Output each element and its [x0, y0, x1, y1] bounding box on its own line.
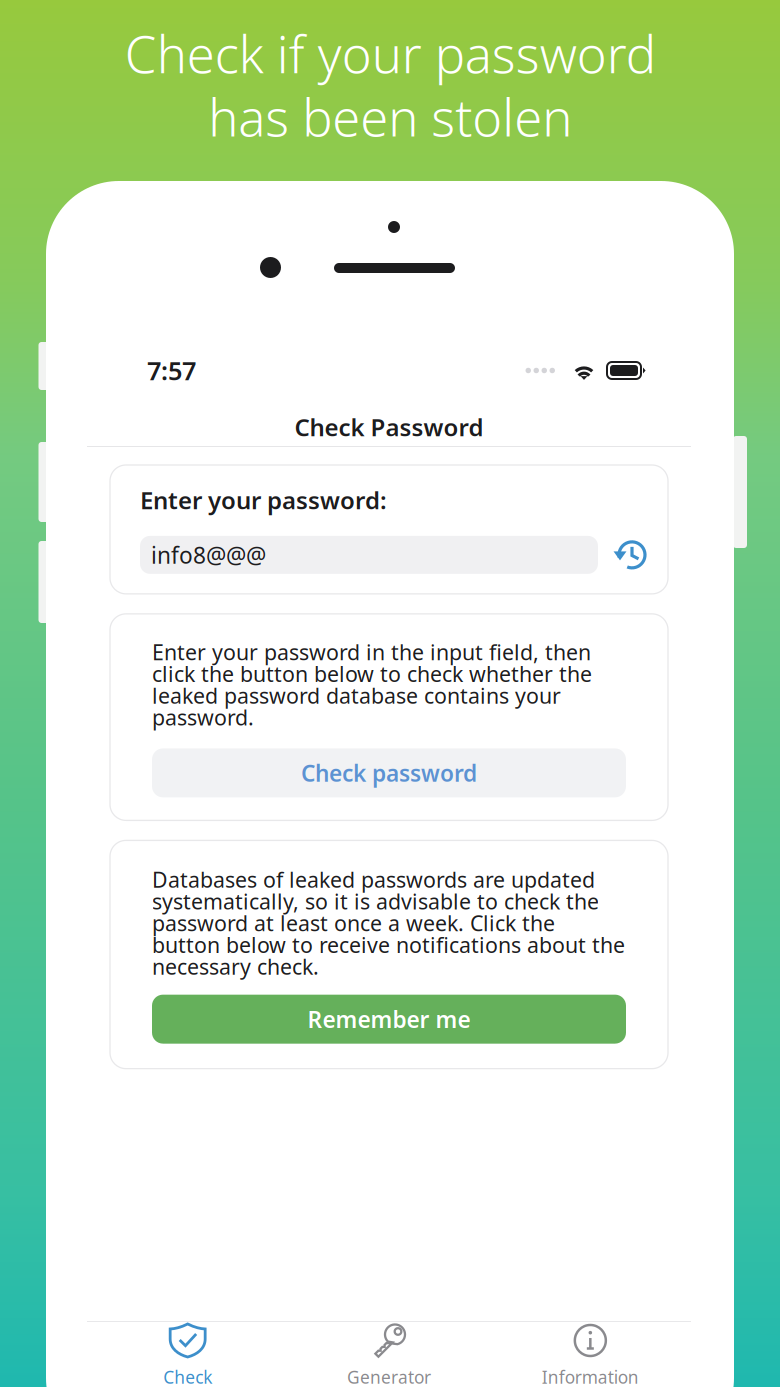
staticText: Check password [301, 758, 477, 788]
button[interactable]: Generator [288, 1321, 490, 1387]
staticText: 7:57 [147, 354, 196, 387]
button[interactable]: Check password [152, 748, 626, 797]
staticText: Remember me [307, 1004, 470, 1034]
staticText: Generator [347, 1365, 431, 1387]
staticText: Check if your password has been stolen [124, 20, 655, 151]
staticText: Databases of leaked passwords are update… [152, 865, 625, 981]
staticText: Enter your password in the input field, … [152, 638, 592, 731]
button[interactable]: Information [490, 1321, 691, 1387]
staticText: info8@@@ [151, 540, 266, 570]
button[interactable]: Remember me [152, 995, 626, 1044]
staticText: Information [542, 1365, 639, 1387]
staticText: Check [163, 1365, 212, 1387]
button[interactable]: Check [87, 1321, 288, 1387]
button[interactable]: Password history [613, 537, 649, 573]
staticText: Check Password [294, 411, 483, 443]
staticText: Enter your password: [140, 484, 387, 516]
